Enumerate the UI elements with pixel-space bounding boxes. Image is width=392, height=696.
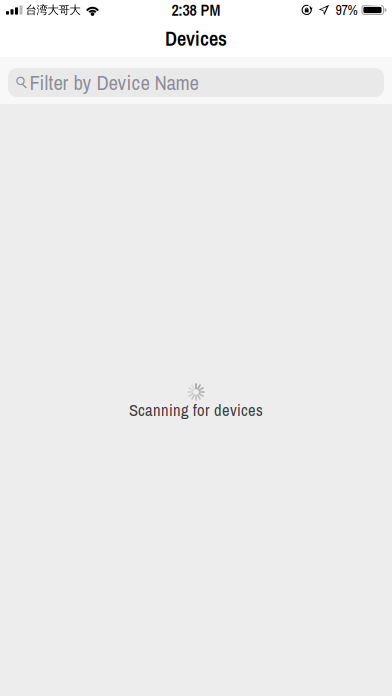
staticText: 台湾大哥大 bbox=[25, 3, 80, 17]
staticText: 97% bbox=[335, 1, 357, 19]
button[interactable]: Filter by Device Name bbox=[8, 68, 384, 97]
staticText: Devices bbox=[165, 25, 227, 52]
staticText: Filter by Device Name bbox=[29, 68, 198, 96]
staticText: Scanning for devices bbox=[129, 399, 263, 421]
staticText: 2:38 PM bbox=[171, 0, 220, 21]
